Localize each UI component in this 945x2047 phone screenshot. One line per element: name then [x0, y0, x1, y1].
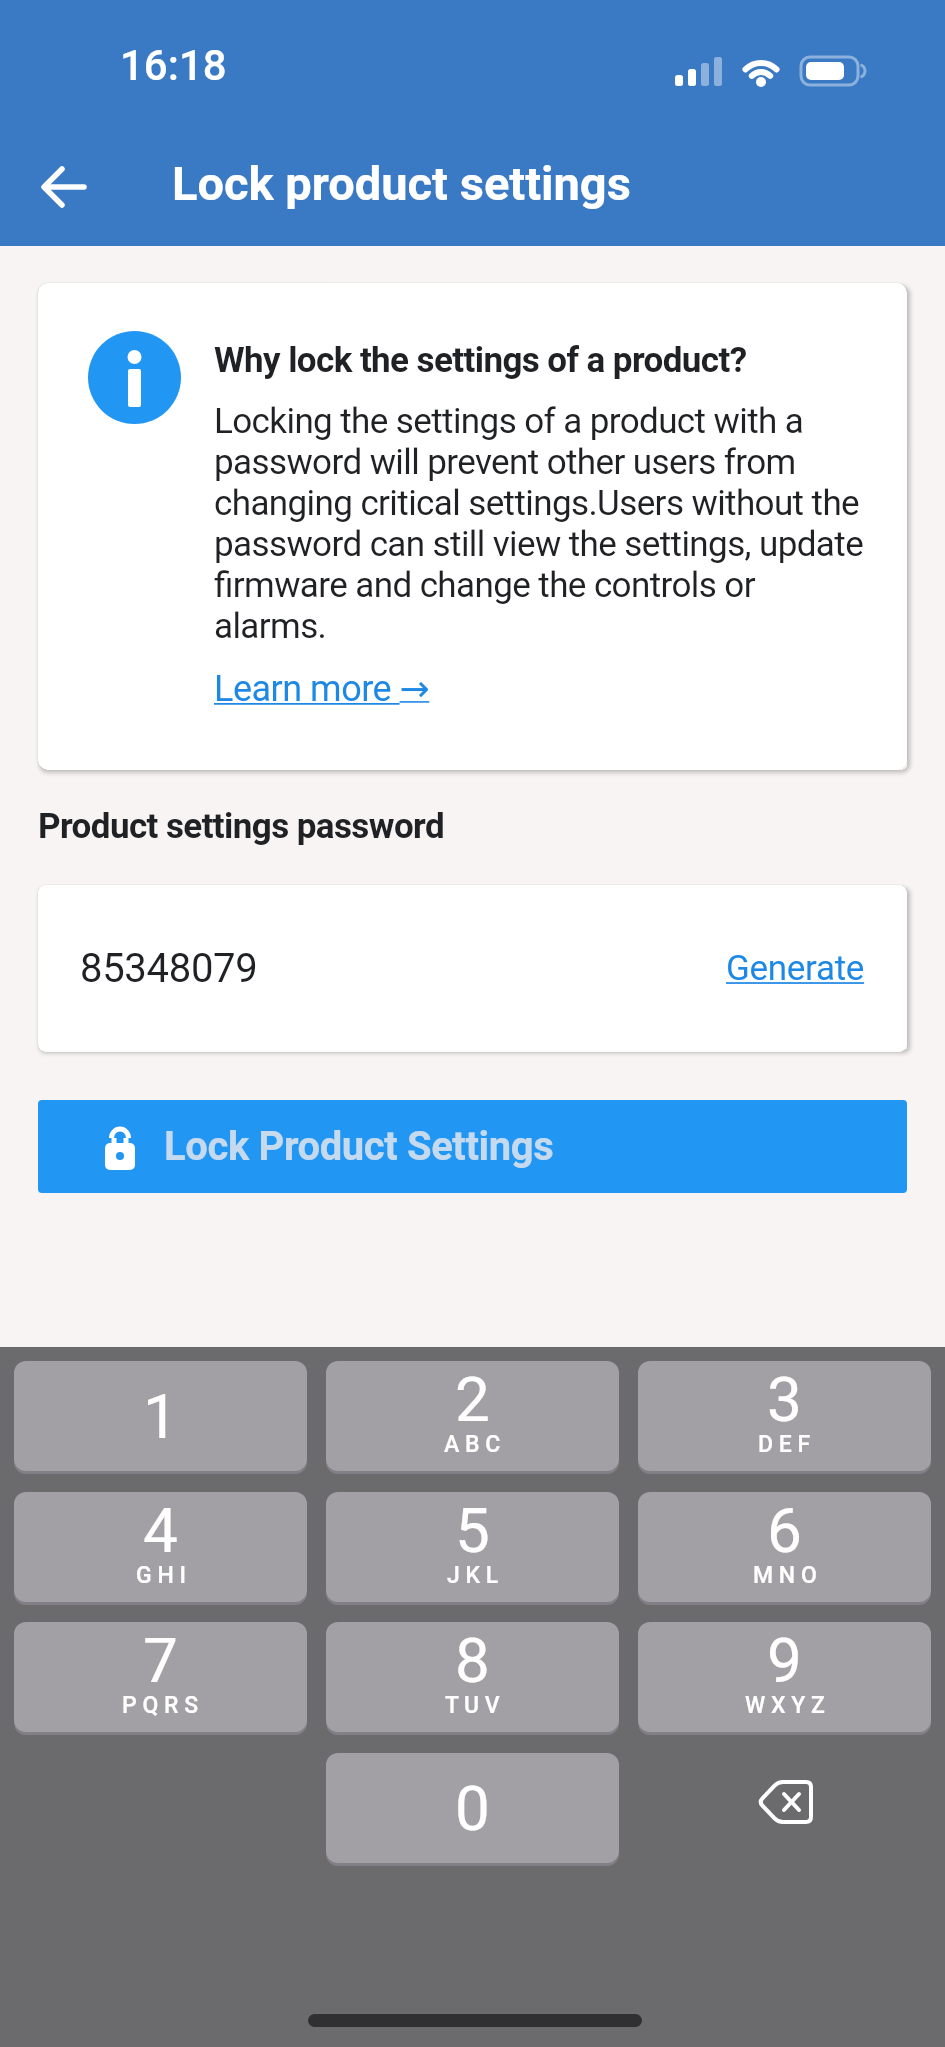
button[interactable]: 5: [326, 1492, 619, 1602]
button[interactable]: 3: [638, 1361, 931, 1471]
staticText: Why lock the settings of a product?: [214, 340, 747, 381]
staticText: P Q R S: [122, 1692, 199, 1719]
button[interactable]: 7: [14, 1622, 307, 1732]
staticText: Product settings password: [38, 806, 445, 847]
button[interactable]: Generate: [726, 948, 865, 989]
staticText: J K L: [447, 1562, 499, 1589]
staticText: 5: [455, 1494, 490, 1567]
staticText: 9: [767, 1624, 802, 1697]
staticText: 85348079: [80, 945, 258, 992]
button[interactable]: 4: [14, 1492, 307, 1602]
staticText: 3: [767, 1363, 802, 1436]
staticText: 6: [767, 1494, 802, 1567]
staticText: 7: [143, 1624, 178, 1697]
button[interactable]: Learn more →: [214, 668, 430, 710]
button[interactable]: 0: [326, 1753, 619, 1863]
staticText: A B C: [444, 1431, 501, 1458]
staticText: D E F: [758, 1431, 811, 1458]
staticText: 2: [455, 1363, 490, 1436]
staticText: Locking the settings of a product with a…: [214, 401, 864, 647]
staticText: T U V: [445, 1692, 500, 1719]
button[interactable]: 9: [638, 1622, 931, 1732]
staticText: Lock product settings: [172, 156, 631, 211]
staticText: 0: [455, 1772, 490, 1845]
staticText: 4: [143, 1494, 178, 1567]
button[interactable]: Lock Product Settings: [38, 1100, 907, 1193]
button[interactable]: 6: [638, 1492, 931, 1602]
button[interactable]: [738, 1747, 838, 1857]
button[interactable]: 1: [14, 1361, 307, 1471]
staticText: M N O: [753, 1562, 817, 1589]
staticText: Lock Product Settings: [164, 1123, 554, 1170]
staticText: W X Y Z: [745, 1692, 825, 1719]
staticText: Generate: [726, 948, 865, 989]
staticText: 16:18: [120, 41, 227, 90]
button[interactable]: 2: [326, 1361, 619, 1471]
button[interactable]: 8: [326, 1622, 619, 1732]
staticText: G H I: [136, 1562, 186, 1589]
staticText: 8: [455, 1624, 490, 1697]
staticText: 1: [143, 1380, 178, 1453]
button[interactable]: [24, 157, 104, 217]
